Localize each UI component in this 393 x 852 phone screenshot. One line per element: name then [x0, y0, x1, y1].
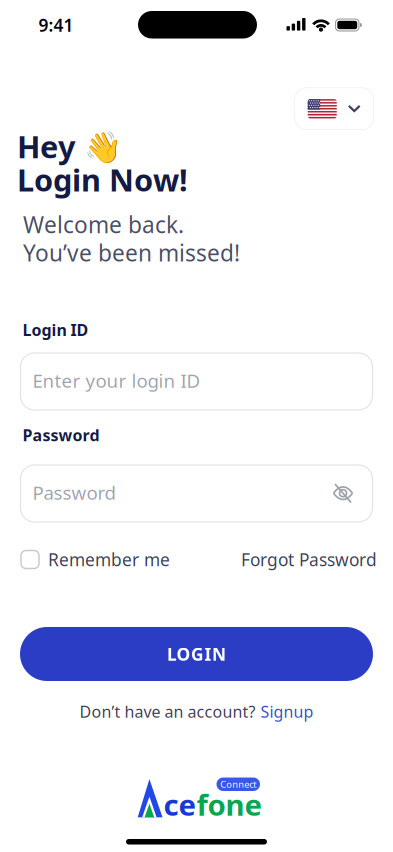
- staticText: Don’t have an account?: [79, 701, 255, 722]
- button[interactable]: Forgot Password: [0, 548, 377, 571]
- staticText: 9:41: [38, 13, 73, 36]
- staticText: Welcome back.: [23, 209, 184, 240]
- staticText: Hey 👋: [17, 126, 122, 167]
- button[interactable]: Remember me: [21, 548, 170, 571]
- staticText: Login ID: [22, 319, 88, 340]
- button[interactable]: Signup: [260, 701, 313, 722]
- staticText: Remember me: [48, 548, 170, 571]
- staticText: Connect: [220, 778, 256, 790]
- staticText: LOGIN: [167, 642, 226, 665]
- button[interactable]: Change language: [294, 87, 374, 130]
- staticText: fone: [196, 785, 262, 824]
- staticText: Password: [32, 480, 115, 505]
- staticText: Signup: [260, 701, 313, 722]
- staticText: You’ve been missed!: [23, 238, 240, 268]
- staticText: Enter your login ID: [32, 368, 200, 393]
- staticText: Login Now!: [17, 159, 188, 200]
- staticText: Password: [22, 424, 99, 446]
- button[interactable]: LOGIN: [20, 627, 373, 681]
- button[interactable]: Enter your login ID: [20, 353, 372, 410]
- staticText: Forgot Password: [241, 548, 377, 571]
- staticText: ce: [163, 785, 196, 824]
- button[interactable]: Password: [20, 465, 372, 522]
